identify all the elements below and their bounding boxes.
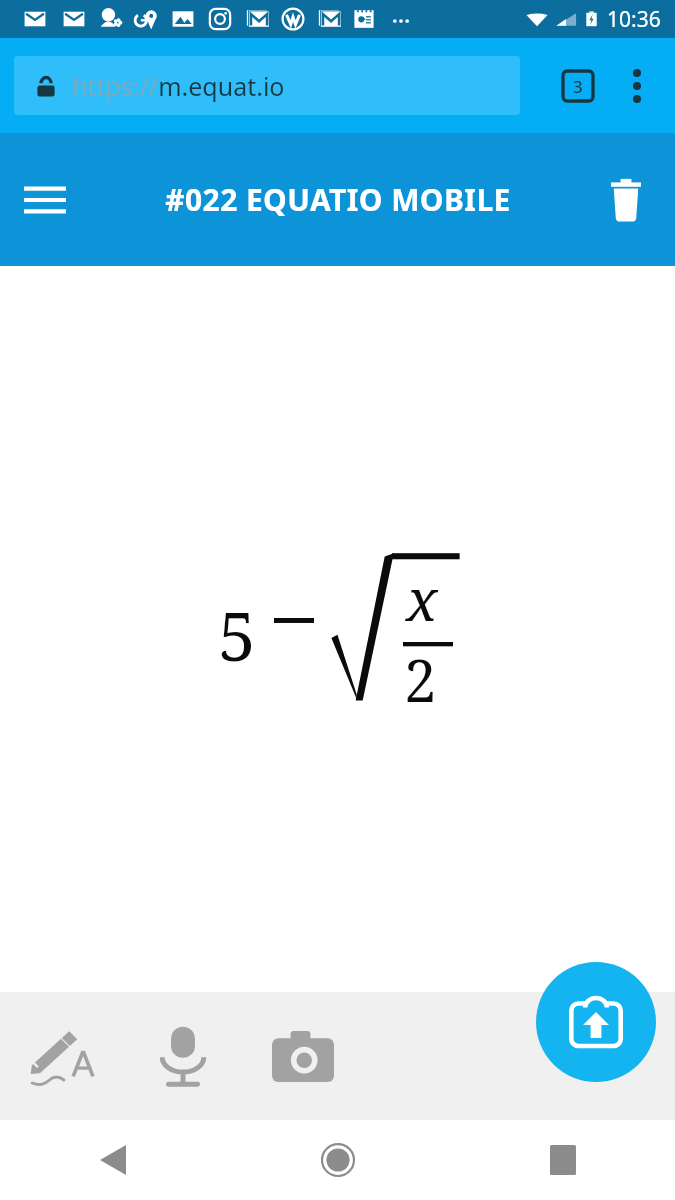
staticText: #022 EQUATIO MOBILE (165, 179, 511, 220)
button[interactable]: Menu (14, 169, 76, 231)
button[interactable]: Delete (595, 169, 657, 231)
button[interactable]: Submit (536, 962, 656, 1082)
staticText: 5 (218, 588, 257, 681)
button[interactable]: More options (615, 64, 659, 108)
button[interactable]: Tabs, 3 open (555, 63, 601, 109)
button[interactable]: Camera input (259, 1012, 347, 1100)
button[interactable]: Recent apps (450, 1120, 675, 1200)
staticText: 10:36 (607, 5, 661, 34)
staticText: 2 (404, 640, 437, 719)
staticText: 3 (573, 75, 583, 98)
staticText: x (406, 559, 438, 638)
button[interactable]: Voice input (139, 1012, 227, 1100)
button[interactable]: Home (225, 1120, 450, 1200)
button[interactable]: Back (0, 1120, 225, 1200)
staticText: https://m.equat.io (72, 69, 285, 103)
button[interactable]: Handwriting input (16, 1012, 104, 1100)
button[interactable]: https://m.equat.io (14, 56, 520, 115)
